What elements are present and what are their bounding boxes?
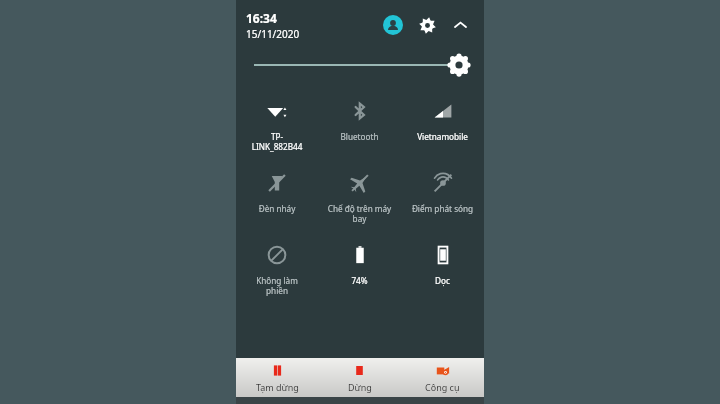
button[interactable]: Collapse	[448, 13, 472, 37]
button[interactable]: Chế độ trên máy bay	[318, 166, 401, 238]
button[interactable]: Không làm phiền	[236, 238, 318, 310]
button[interactable]: 74%	[318, 238, 401, 310]
button[interactable]: Điểm phát sóng	[401, 166, 484, 238]
staticText: 74%	[320, 275, 399, 286]
button[interactable]: Tạm dừng	[236, 358, 318, 397]
staticText: Tạm dừng	[256, 381, 299, 393]
button[interactable]: Vietnamobile	[401, 94, 484, 166]
staticText: 15/11/2020	[246, 27, 300, 41]
staticText: Dọc	[403, 275, 482, 286]
staticText: CHỈNH SỬA	[422, 376, 474, 389]
button[interactable]: Dọc	[401, 238, 484, 310]
staticText: Chế độ trên máy bay	[320, 203, 399, 224]
staticText: Công cụ	[425, 381, 460, 393]
button[interactable]: TP- LINK_882B44	[236, 94, 318, 166]
staticText: 16:34	[246, 10, 277, 26]
staticText: Điểm phát sóng	[403, 203, 482, 214]
staticText: Đèn nháy	[238, 203, 316, 214]
staticText: Dừng	[348, 381, 372, 393]
staticText: Không làm phiền	[238, 275, 316, 296]
button[interactable]: Đèn nháy	[236, 166, 318, 238]
staticText: TP- LINK_882B44	[238, 131, 316, 152]
button[interactable]: CHỈNH SỬA	[420, 374, 476, 391]
staticText: Bluetooth	[320, 131, 399, 142]
button[interactable]: Dừng	[318, 358, 401, 397]
button[interactable]: Công cụ	[401, 358, 484, 397]
button[interactable]: Brightness	[236, 50, 484, 80]
button[interactable]: Settings	[414, 12, 440, 38]
button[interactable]: Bluetooth	[318, 94, 401, 166]
button[interactable]: User account	[380, 12, 406, 38]
staticText: Vietnamobile	[403, 131, 482, 142]
